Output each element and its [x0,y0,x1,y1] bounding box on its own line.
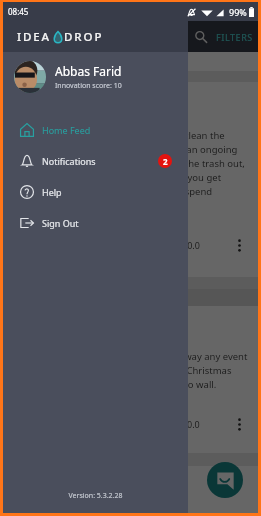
staticText: 0.0 [187,418,200,430]
staticText: 99% [229,6,247,18]
button[interactable]: New message [207,462,243,498]
button[interactable]: Search [189,21,213,52]
button[interactable]: Help [3,176,188,207]
button[interactable]: More options [229,235,249,255]
staticText: Abbas Farid [55,63,122,79]
button[interactable]: Home Feed [3,114,188,145]
button[interactable]: FILTERS [211,24,258,50]
staticText: Sign Out [42,217,79,229]
staticText: Version: 5.3.2.28 [3,491,188,501]
staticText: FILTERS [216,31,253,43]
staticText: IDEA [17,29,52,45]
button[interactable]: Sign Out [3,207,188,238]
staticText: Innovation score: 10 [55,81,122,91]
staticText: It is everyone's duty to keep the office… [13,129,245,197]
staticText: Help [42,186,62,198]
staticText: 10.0 [182,239,200,251]
button[interactable]: More options [229,414,249,434]
staticText: Home Feed [42,124,91,136]
staticText: Notifications [42,155,96,167]
button[interactable]: Abbas Farid [3,52,188,102]
button[interactable]: Notifications [3,145,188,176]
staticText: 2 [163,156,168,167]
staticText: 08:45 [8,6,29,17]
staticText: DROP [64,29,104,45]
staticText: We should celebrate in a much bigger way… [13,350,248,390]
